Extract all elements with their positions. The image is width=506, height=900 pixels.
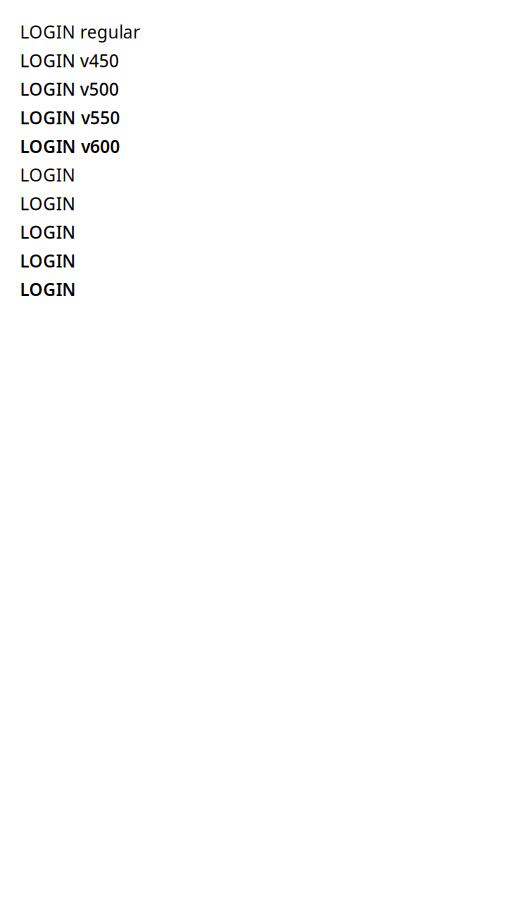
staticText: LOGIN: [20, 249, 76, 272]
staticText: LOGIN: [20, 192, 75, 215]
staticText: LOGIN v550: [20, 106, 120, 129]
staticText: LOGIN v500: [20, 77, 119, 101]
staticText: LOGIN v600: [20, 134, 120, 158]
staticText: LOGIN: [20, 277, 76, 301]
staticText: LOGIN regular: [20, 20, 140, 44]
staticText: LOGIN: [20, 163, 75, 187]
staticText: LOGIN v450: [20, 49, 119, 72]
staticText: LOGIN: [20, 220, 75, 244]
